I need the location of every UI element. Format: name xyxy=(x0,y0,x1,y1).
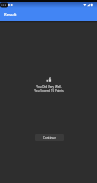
staticText: Result xyxy=(4,12,17,18)
button[interactable]: Result xyxy=(0,8,97,21)
button[interactable]: Continue xyxy=(35,134,64,141)
staticText: You Did Very Well. You Scored 15 Points xyxy=(34,85,64,93)
staticText: Continue xyxy=(43,136,56,140)
other: Thumbs up xyxy=(46,77,51,82)
